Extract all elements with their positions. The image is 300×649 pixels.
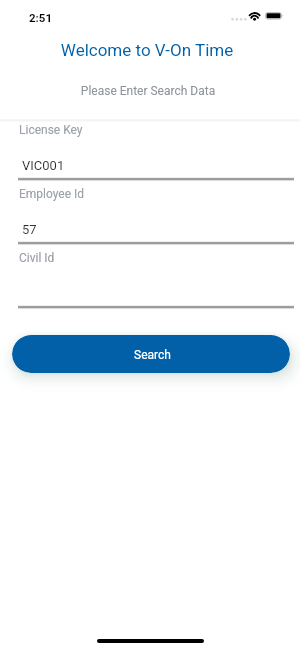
button[interactable]: Employee Id [0, 187, 300, 245]
staticText: Welcome to V-On Time [0, 40, 297, 60]
staticText: Search [134, 348, 171, 362]
button[interactable]: Search [12, 335, 290, 373]
other: Wi-Fi [247, 10, 263, 23]
staticText: License Key [19, 123, 83, 137]
staticText: 2:51 [29, 11, 53, 24]
button[interactable]: License Key [0, 123, 300, 181]
staticText: Civil Id [19, 251, 55, 265]
other: Battery full [264, 10, 285, 23]
staticText: Please Enter Search Data [0, 84, 298, 98]
other: Cellular signal [230, 12, 247, 27]
staticText: Employee Id [19, 187, 85, 201]
staticText: 57 [22, 222, 37, 237]
staticText: VIC001 [22, 158, 65, 173]
other: Home indicator [97, 639, 204, 643]
button[interactable]: Civil Id [0, 251, 300, 309]
